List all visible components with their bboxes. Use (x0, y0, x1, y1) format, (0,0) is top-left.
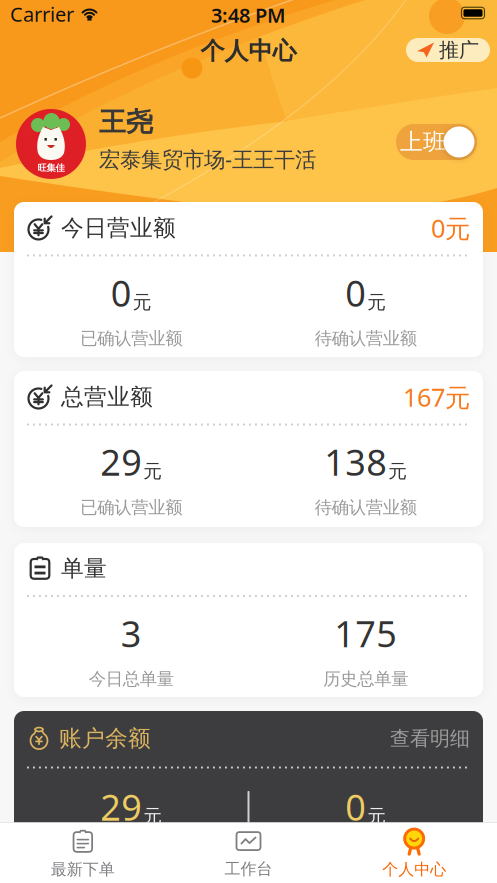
staticText: 待确认营业额 (315, 328, 417, 349)
staticText: 今日总单量 (89, 668, 174, 690)
button[interactable]: 查看明细 (390, 726, 470, 751)
staticText: 0 (345, 269, 366, 317)
staticText: 167元 (403, 380, 470, 414)
button[interactable]: 推广 (406, 38, 490, 62)
button[interactable]: 个人中心 (331, 827, 497, 879)
staticText: 175 (334, 609, 397, 657)
staticText: 3 (121, 609, 142, 657)
button[interactable]: 最新下单 (0, 827, 166, 879)
staticText: 个人中心 (382, 860, 446, 879)
staticText: 0 (111, 269, 132, 317)
staticText: 29 (100, 438, 142, 486)
staticText: 旺集佳 (37, 162, 64, 174)
staticText: 元 (143, 460, 162, 483)
staticText: 最新下单 (51, 860, 115, 879)
staticText: 王尧 (99, 106, 153, 138)
staticText: 0 (345, 783, 366, 831)
button[interactable]: 上班 (396, 124, 477, 160)
staticText: 查看明细 (390, 726, 470, 751)
staticText: 元 (133, 291, 152, 314)
staticText: 0元 (431, 211, 470, 245)
staticText: 单量 (61, 554, 107, 582)
staticText: 历史总单量 (323, 668, 408, 690)
staticText: 今日营业额 (61, 214, 176, 242)
staticText: 个人中心 (200, 36, 296, 66)
button[interactable]: 工作台 (166, 827, 331, 879)
staticText: 工作台 (224, 859, 272, 879)
staticText: 3:48 PM (211, 2, 286, 28)
staticText: Carrier (10, 1, 74, 27)
staticText: 元 (367, 291, 386, 314)
staticText: 宏泰集贸市场-王王干活 (99, 145, 316, 173)
staticText: 元 (367, 805, 386, 828)
staticText: 元 (388, 460, 407, 483)
staticText: 待确认营业额 (315, 497, 417, 518)
staticText: 138 (324, 438, 387, 486)
staticText: 29 (100, 783, 142, 831)
staticText: 元 (143, 805, 162, 828)
staticText: 已确认营业额 (80, 497, 182, 518)
staticText: 上班 (400, 128, 446, 156)
staticText: 账户余额 (59, 725, 151, 752)
staticText: 总营业额 (61, 383, 153, 411)
staticText: 已确认营业额 (80, 328, 182, 349)
staticText: 推广 (439, 38, 479, 62)
